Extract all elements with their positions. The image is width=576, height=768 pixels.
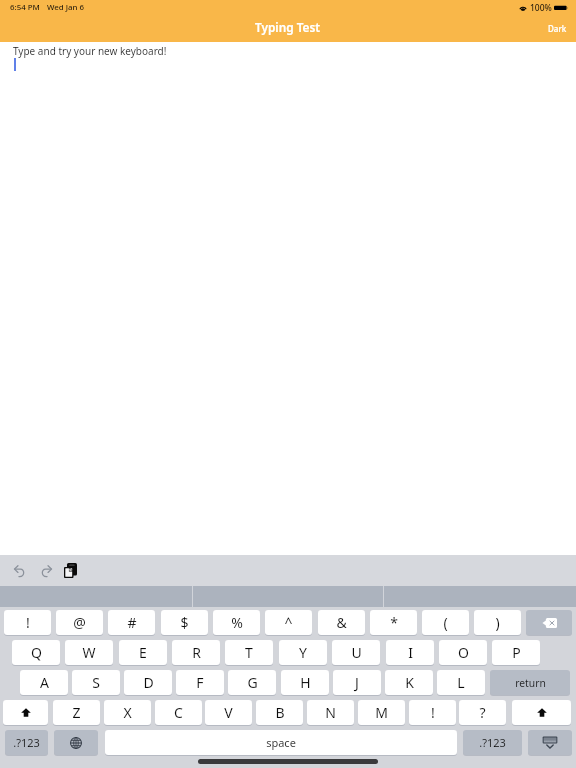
- staticText: N: [325, 703, 336, 722]
- button[interactable]: W: [65, 640, 113, 665]
- button[interactable]: L: [437, 670, 485, 695]
- button[interactable]: ^: [265, 610, 312, 635]
- button[interactable]: R: [172, 640, 220, 665]
- button[interactable]: !: [409, 700, 456, 725]
- staticText: O: [458, 643, 469, 662]
- staticText: *: [390, 613, 398, 632]
- button[interactable]: .?123: [463, 730, 522, 755]
- button[interactable]: D: [124, 670, 172, 695]
- staticText: G: [247, 673, 258, 692]
- staticText: C: [174, 703, 183, 722]
- staticText: T: [245, 643, 253, 662]
- button[interactable]: space: [105, 730, 457, 755]
- staticText: Z: [72, 703, 81, 722]
- button[interactable]: [3, 700, 48, 725]
- button[interactable]: B: [256, 700, 303, 725]
- button[interactable]: Undo: [8, 559, 31, 582]
- button[interactable]: &: [318, 610, 365, 635]
- staticText: I: [408, 643, 413, 662]
- staticText: .?123: [13, 735, 40, 750]
- button[interactable]: F: [176, 670, 224, 695]
- staticText: Dark: [548, 23, 567, 34]
- staticText: .?123: [479, 735, 506, 750]
- button[interactable]: C: [155, 700, 202, 725]
- button[interactable]: ): [474, 610, 521, 635]
- staticText: ): [495, 613, 500, 632]
- button[interactable]: K: [385, 670, 433, 695]
- button[interactable]: X: [104, 700, 151, 725]
- button[interactable]: P: [492, 640, 540, 665]
- staticText: Wed Jan 6: [47, 2, 85, 13]
- button[interactable]: Redo: [35, 559, 58, 582]
- staticText: %: [231, 613, 243, 632]
- button[interactable]: Paste: [59, 559, 82, 582]
- staticText: $: [180, 613, 189, 632]
- staticText: A: [40, 673, 49, 692]
- button[interactable]: !: [4, 610, 51, 635]
- button[interactable]: E: [119, 640, 167, 665]
- button[interactable]: return: [490, 670, 570, 695]
- button[interactable]: U: [332, 640, 380, 665]
- staticText: S: [92, 673, 100, 692]
- button[interactable]: G: [228, 670, 276, 695]
- staticText: ?: [479, 703, 486, 722]
- button[interactable]: [54, 730, 98, 755]
- button[interactable]: #: [108, 610, 155, 635]
- staticText: U: [351, 643, 362, 662]
- button[interactable]: O: [439, 640, 487, 665]
- button[interactable]: [526, 610, 572, 635]
- staticText: K: [405, 673, 414, 692]
- staticText: Q: [31, 643, 42, 662]
- staticText: M: [375, 703, 388, 722]
- button[interactable]: I: [386, 640, 434, 665]
- staticText: H: [300, 673, 311, 692]
- staticText: J: [355, 673, 359, 692]
- button[interactable]: Z: [53, 700, 100, 725]
- staticText: L: [457, 673, 465, 692]
- button[interactable]: J: [333, 670, 381, 695]
- staticText: !: [26, 613, 30, 632]
- staticText: ^: [284, 613, 293, 632]
- button[interactable]: N: [307, 700, 354, 725]
- button[interactable]: .?123: [5, 730, 48, 755]
- staticText: 100%: [530, 2, 552, 14]
- staticText: W: [82, 643, 96, 662]
- staticText: !: [431, 703, 435, 722]
- button[interactable]: @: [56, 610, 103, 635]
- staticText: D: [143, 673, 154, 692]
- staticText: Type and try your new keyboard!: [13, 44, 167, 58]
- staticText: space: [266, 735, 296, 750]
- button[interactable]: Y: [279, 640, 327, 665]
- button[interactable]: $: [161, 610, 208, 635]
- button[interactable]: T: [225, 640, 273, 665]
- staticText: P: [512, 643, 521, 662]
- button[interactable]: (: [422, 610, 469, 635]
- staticText: F: [196, 673, 204, 692]
- staticText: return: [515, 676, 546, 690]
- button[interactable]: V: [205, 700, 252, 725]
- button[interactable]: [528, 730, 572, 755]
- button[interactable]: Q: [12, 640, 60, 665]
- staticText: Typing Test: [255, 19, 321, 35]
- staticText: (: [443, 613, 448, 632]
- button[interactable]: %: [213, 610, 260, 635]
- staticText: R: [192, 643, 201, 662]
- button[interactable]: [512, 700, 571, 725]
- staticText: B: [275, 703, 285, 722]
- staticText: #: [127, 613, 137, 632]
- button[interactable]: *: [370, 610, 417, 635]
- staticText: X: [123, 703, 132, 722]
- staticText: @: [73, 613, 86, 632]
- staticText: &: [336, 613, 347, 632]
- button[interactable]: M: [358, 700, 405, 725]
- button[interactable]: H: [281, 670, 329, 695]
- staticText: V: [224, 703, 233, 722]
- staticText: E: [139, 643, 147, 662]
- button[interactable]: Dark: [548, 23, 567, 34]
- button[interactable]: ?: [459, 700, 506, 725]
- button[interactable]: S: [72, 670, 120, 695]
- button[interactable]: A: [20, 670, 68, 695]
